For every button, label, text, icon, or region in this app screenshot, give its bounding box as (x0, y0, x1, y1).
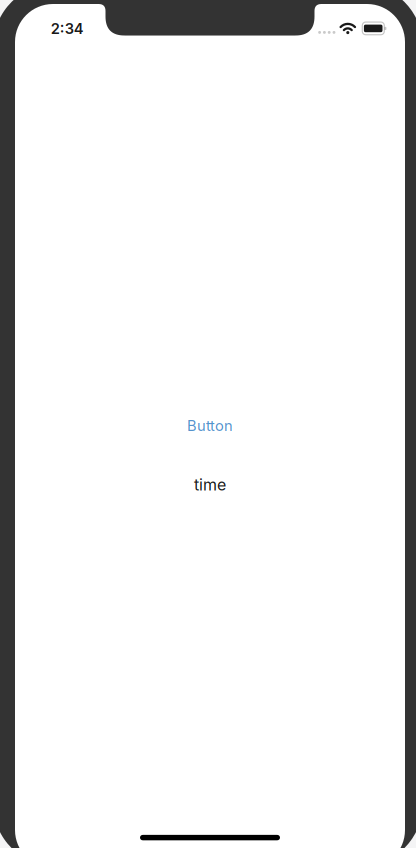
staticText: 2:34 (51, 20, 84, 37)
staticText: Button (187, 417, 233, 434)
staticText: time (194, 475, 226, 494)
button[interactable]: Button (187, 417, 233, 434)
